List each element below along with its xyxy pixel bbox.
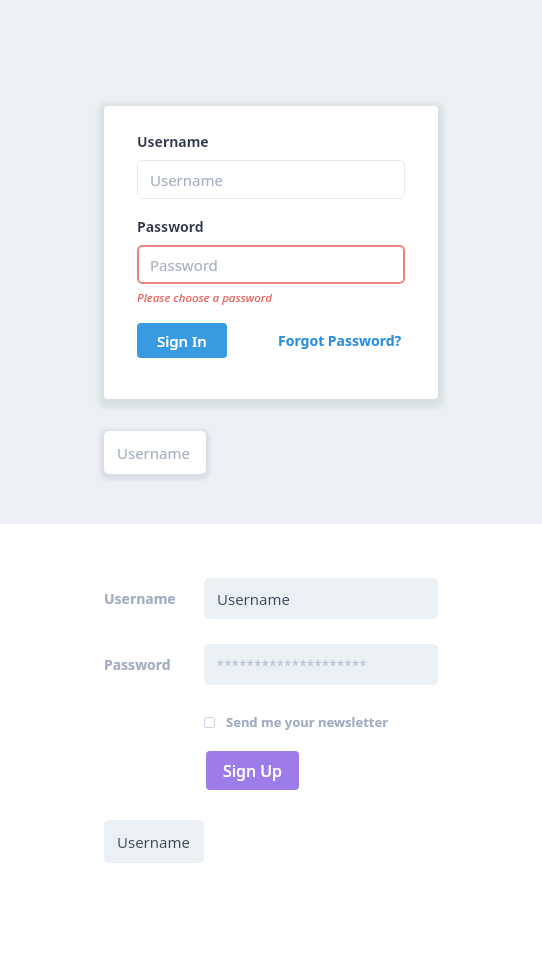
staticText: Username bbox=[117, 832, 190, 852]
staticText: Please choose a password bbox=[137, 290, 272, 306]
button[interactable]: Forgot Password? bbox=[278, 325, 402, 356]
staticText: Username bbox=[104, 589, 204, 608]
button[interactable]: Send me your newsletter bbox=[204, 709, 389, 735]
staticText: Password bbox=[150, 255, 218, 275]
button[interactable]: Username bbox=[137, 160, 405, 199]
staticText: Username bbox=[137, 132, 209, 151]
staticText: Forgot Password? bbox=[278, 331, 402, 350]
staticText: Password bbox=[104, 655, 204, 674]
button[interactable]: Username bbox=[204, 578, 438, 619]
staticText: Sign Up bbox=[223, 760, 282, 782]
button[interactable]: Password bbox=[137, 245, 405, 284]
button[interactable]: Sign In bbox=[137, 323, 227, 358]
button[interactable]: Sign Up bbox=[206, 751, 299, 790]
button[interactable]: ******************** bbox=[204, 644, 438, 685]
button[interactable]: Username bbox=[104, 431, 206, 474]
staticText: Username bbox=[150, 170, 223, 190]
staticText: Username bbox=[217, 589, 290, 609]
staticText: ******************** bbox=[217, 657, 368, 673]
staticText: Username bbox=[117, 443, 190, 463]
staticText: Password bbox=[137, 217, 204, 236]
staticText: Send me your newsletter bbox=[226, 713, 389, 731]
button[interactable]: Username bbox=[104, 820, 204, 863]
staticText: Sign In bbox=[157, 331, 207, 351]
